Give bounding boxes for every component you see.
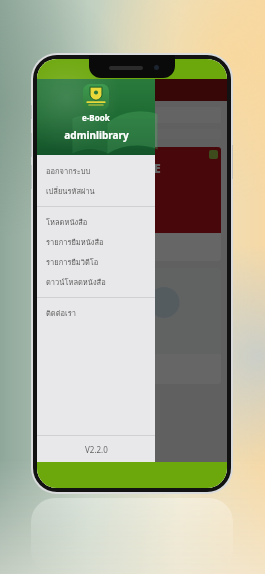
staticText: V2.2.0	[85, 444, 108, 455]
staticText: CHINESE	[104, 159, 161, 177]
staticText: ดาวน์โหลดหนังสือ	[46, 276, 106, 288]
button[interactable]: ออกจากระบบ	[37, 161, 155, 181]
button[interactable]	[43, 107, 221, 123]
staticText: โหลดหนังสือ	[46, 216, 88, 228]
button[interactable]: CHINESE	[43, 147, 221, 261]
staticText: e-Book	[82, 112, 110, 123]
button[interactable]: รายการยืมวิดีโอ	[37, 252, 155, 272]
staticText: รายการยืมหนังสือ	[46, 236, 104, 248]
staticText: รายการยืมวิดีโอ	[46, 256, 99, 268]
staticText: Chinese 3 in 1	[47, 237, 99, 247]
button[interactable]: e-Book	[37, 79, 155, 155]
staticText: ติดต่อเรา	[46, 307, 76, 319]
staticText: ออกจากระบบ	[46, 165, 91, 177]
button[interactable]: การพยาบาล	[43, 268, 221, 384]
button[interactable]: เปลี่ยนรหัสผ่าน	[37, 181, 155, 201]
staticText: เปลี่ยนรหัสผ่าน	[46, 185, 95, 197]
button[interactable]: รายการยืมหนังสือ	[37, 232, 155, 252]
button[interactable]: ติดต่อเรา	[37, 303, 155, 323]
staticText: adminlibrary	[64, 128, 129, 142]
button[interactable]: โหลดหนังสือ	[37, 212, 155, 232]
button[interactable]: ดาวน์โหลดหนังสือ	[37, 272, 155, 292]
staticText: เบื้องต้น	[118, 286, 146, 299]
